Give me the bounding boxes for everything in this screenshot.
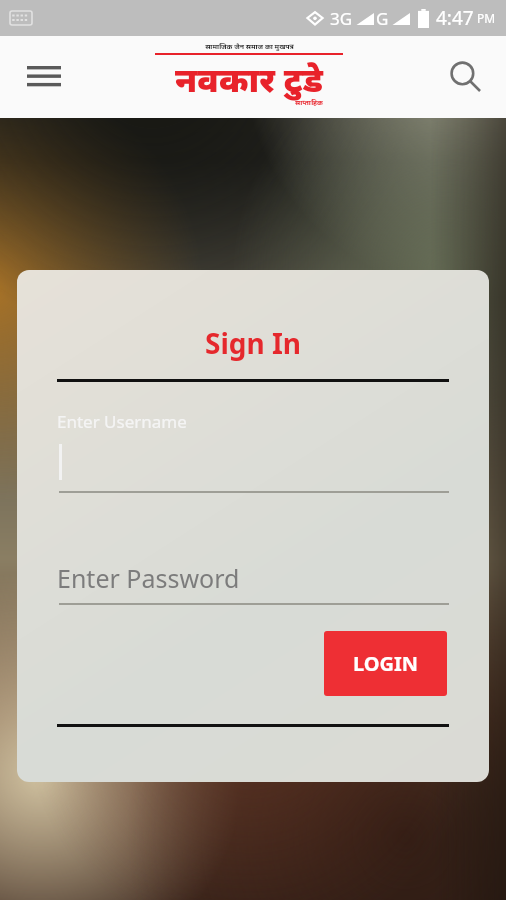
button[interactable]: Open navigation menu	[14, 47, 74, 107]
staticText: LOGIN	[353, 650, 419, 677]
staticText: 3G	[330, 7, 353, 30]
staticText: Sign In	[57, 324, 449, 362]
button[interactable]: Search	[438, 49, 494, 105]
staticText: सामाजिक जैन समाज का मुखपत्र	[205, 42, 294, 52]
button[interactable]: Enter Password	[57, 561, 449, 595]
staticText: नवकार टुडे	[175, 56, 323, 102]
staticText: Enter Password	[57, 561, 240, 595]
button[interactable]: LOGIN	[324, 631, 447, 696]
staticText: G	[376, 7, 389, 30]
staticText: साप्ताहिक	[295, 98, 323, 108]
staticText: 4:47	[436, 5, 474, 31]
staticText: PM	[477, 10, 496, 26]
staticText: Enter Username	[57, 410, 187, 433]
